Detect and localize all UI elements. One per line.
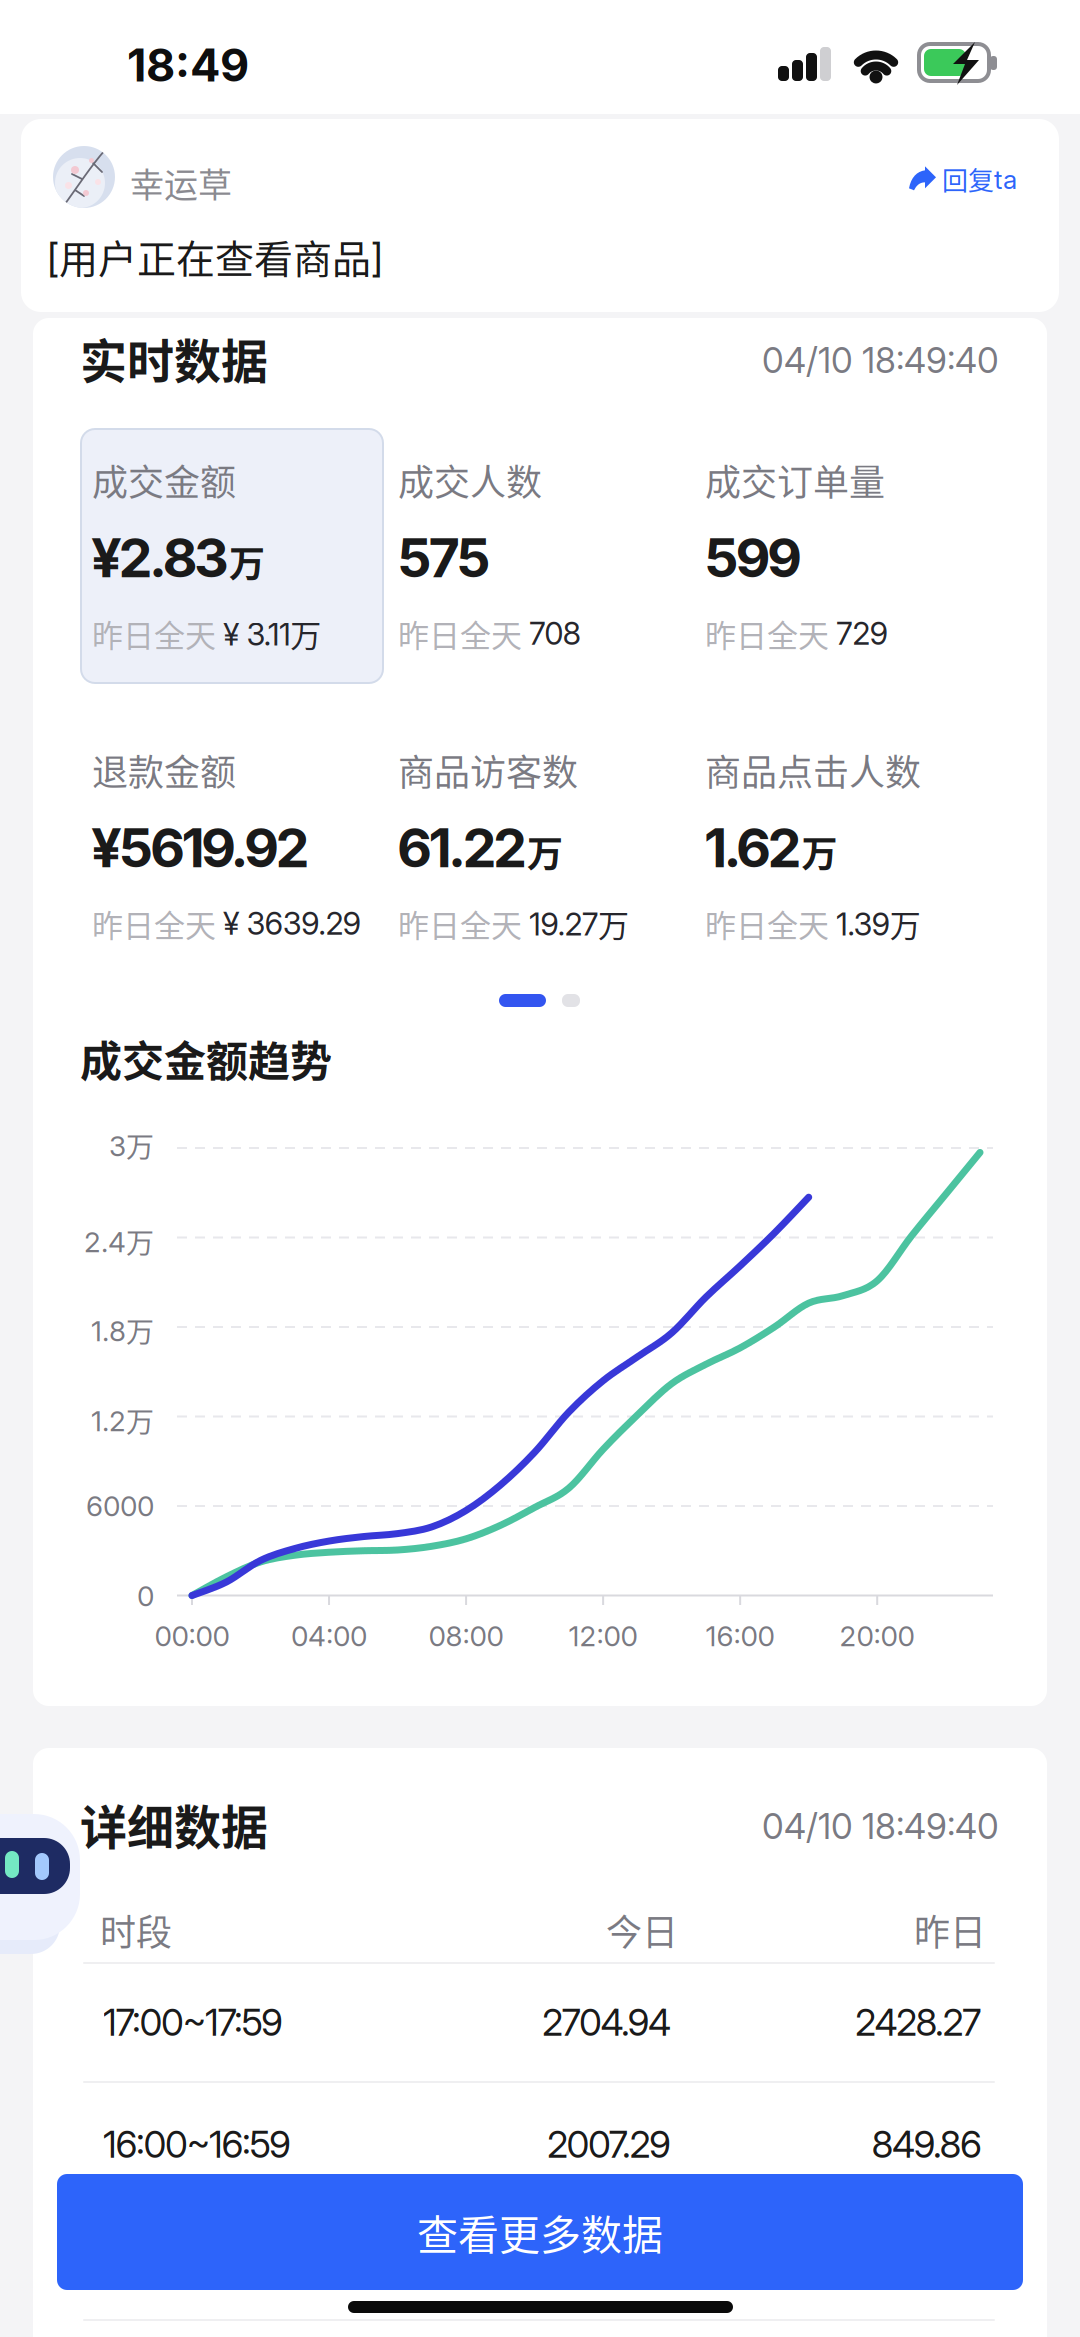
staticText: 昨日全天	[92, 901, 223, 946]
staticText: 昨日全天	[705, 611, 836, 656]
staticText: 万	[527, 826, 563, 878]
staticText: 575	[397, 525, 491, 590]
staticText: 0	[137, 1579, 154, 1613]
button[interactable]: 成交人数	[398, 454, 581, 519]
staticText: 幸运草	[130, 158, 232, 207]
staticText: 成交金额趋势	[80, 1028, 332, 1089]
staticText: ¥5619.92	[91, 815, 309, 880]
staticText: 849.86	[871, 2122, 982, 2167]
staticText: 昨日全天	[398, 611, 529, 656]
staticText: 12:00	[568, 1619, 637, 1653]
button[interactable]: 回复ta	[909, 160, 1017, 198]
staticText: 599	[704, 525, 802, 590]
staticText: 退款金额	[92, 744, 236, 796]
staticText: 1.2万	[91, 1400, 154, 1440]
staticText: 04/10 18:49:40	[762, 1805, 999, 1847]
button[interactable]: 查看更多数据	[57, 2174, 1023, 2290]
staticText: 17:00~17:59	[103, 2000, 283, 2045]
staticText: 查看更多数据	[417, 2202, 663, 2262]
staticText: 今日	[606, 1904, 678, 1956]
staticText: 2.4万	[84, 1221, 154, 1261]
staticText: 成交金额	[92, 454, 236, 506]
staticText: 04/10 18:49:40	[762, 339, 999, 381]
staticText: 实时数据	[80, 324, 268, 392]
staticText: 16:00	[705, 1619, 774, 1653]
staticText: 00:00	[154, 1619, 229, 1653]
staticText: 3万	[109, 1125, 154, 1165]
button[interactable]: 成交金额	[92, 454, 321, 519]
staticText: 729	[836, 615, 888, 652]
staticText: ¥2.83	[91, 525, 229, 590]
button[interactable]: 商品点击人数	[705, 744, 921, 809]
staticText: 16:00~16:59	[103, 2122, 291, 2167]
staticText: 昨日全天	[705, 901, 836, 946]
staticText: 20:00	[839, 1619, 914, 1653]
staticText: 2007.29	[547, 2122, 671, 2167]
staticText: 昨日全天	[398, 901, 529, 946]
staticText: 19.27万	[529, 901, 629, 946]
staticText: 商品点击人数	[705, 744, 921, 796]
staticText: 1.8万	[91, 1310, 154, 1350]
staticText: 万	[229, 536, 265, 588]
staticText: 昨日全天	[92, 611, 223, 656]
staticText: 成交订单量	[705, 454, 885, 506]
staticText: ¥ 3639.29	[223, 905, 362, 942]
button[interactable]: 成交订单量	[705, 454, 888, 519]
staticText: 详细数据	[80, 1790, 268, 1858]
staticText: 商品访客数	[398, 744, 578, 796]
staticText: 18:49	[127, 38, 249, 92]
staticText: 04:00	[291, 1619, 367, 1653]
button[interactable]: 商品访客数	[398, 744, 629, 809]
staticText: 1.62	[704, 815, 801, 880]
staticText: 1.39万	[836, 901, 921, 946]
staticText: 61.22	[397, 815, 527, 880]
staticText: 6000	[86, 1489, 154, 1523]
staticText: [用户正在查看商品]	[47, 228, 383, 284]
staticText: 万	[801, 826, 837, 878]
staticText: 成交人数	[398, 454, 542, 506]
button[interactable]: 退款金额	[92, 744, 362, 809]
staticText: 2704.94	[542, 2000, 671, 2045]
staticText: 708	[529, 615, 581, 652]
staticText: 时段	[100, 1904, 172, 1956]
staticText: 08:00	[428, 1619, 503, 1653]
staticText: 2428.27	[855, 2000, 982, 2045]
staticText: ¥ 3.11万	[223, 611, 321, 656]
staticText: 回复ta	[942, 160, 1017, 198]
staticText: 昨日	[914, 1904, 986, 1956]
